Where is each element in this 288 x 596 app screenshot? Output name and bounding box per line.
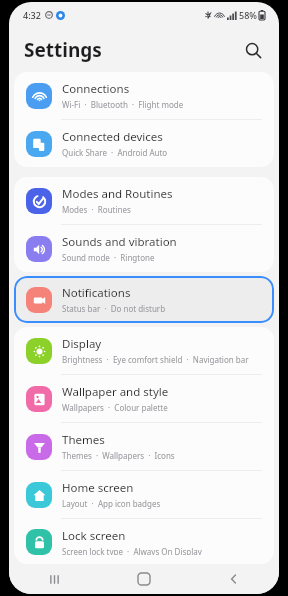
staticText: Modes and Routines [62, 186, 173, 202]
staticText: Sound mode · Ringtone [62, 252, 155, 263]
button[interactable]: Search [237, 34, 269, 66]
staticText: Brightness · Eye comfort shield · Naviga… [62, 354, 249, 365]
staticText: Display [62, 336, 102, 352]
staticText: Themes [62, 432, 105, 448]
button[interactable]: Connections [14, 72, 274, 119]
staticText: 58% [239, 9, 257, 21]
staticText: Lock screen [62, 528, 126, 544]
button[interactable]: Themes [14, 423, 274, 470]
staticText: Home screen [62, 480, 134, 496]
button[interactable]: Home screen [14, 471, 274, 518]
button[interactable]: Wallpaper and style [14, 375, 274, 422]
staticText: Modes · Routines [62, 204, 131, 215]
button[interactable]: Modes and Routines [14, 177, 274, 224]
button[interactable]: Connected devices [14, 120, 274, 167]
button[interactable]: Sounds and vibration [14, 225, 274, 272]
staticText: Notifications [62, 285, 131, 301]
staticText: Wallpapers · Colour palette [62, 402, 168, 413]
button[interactable]: Back [214, 564, 254, 594]
button[interactable]: Recents [34, 564, 74, 594]
button[interactable]: Lock screen [14, 519, 274, 564]
staticText: Connected devices [62, 129, 163, 145]
staticText: Screen lock type · Always On Display [62, 546, 202, 555]
staticText: Sounds and vibration [62, 234, 177, 250]
staticText: Status bar · Do not disturb [62, 303, 166, 314]
staticText: Layout · App icon badges [62, 498, 161, 509]
staticText: 4:32 [23, 9, 41, 21]
staticText: Wi-Fi · Bluetooth · Flight mode [62, 99, 184, 110]
staticText: Connections [62, 81, 130, 97]
button[interactable]: Display [14, 327, 274, 374]
button[interactable]: Notifications [14, 276, 274, 323]
staticText: Quick Share · Android Auto [62, 147, 168, 158]
staticText: Wallpaper and style [62, 384, 169, 400]
button[interactable]: Home [124, 564, 164, 594]
staticText: Settings [24, 37, 102, 63]
staticText: Themes · Wallpapers · Icons [62, 450, 175, 461]
